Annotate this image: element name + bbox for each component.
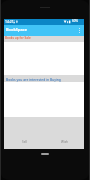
staticText: Books up for Sale xyxy=(5,36,31,40)
button[interactable]: More options xyxy=(75,25,84,36)
staticText: Wish xyxy=(61,140,68,144)
button[interactable]: Books you are interested in Buying xyxy=(4,75,84,82)
staticText: Sell xyxy=(22,140,27,144)
staticText: 60% xyxy=(72,19,78,23)
staticText: Books you are interested in Buying xyxy=(6,77,61,81)
button[interactable]: Books up for Sale xyxy=(4,36,84,42)
staticText: 14:21 xyxy=(5,19,14,24)
button[interactable]: Wish xyxy=(44,139,84,145)
staticText: BookSpace xyxy=(6,27,28,32)
button[interactable]: Sell xyxy=(4,139,44,145)
